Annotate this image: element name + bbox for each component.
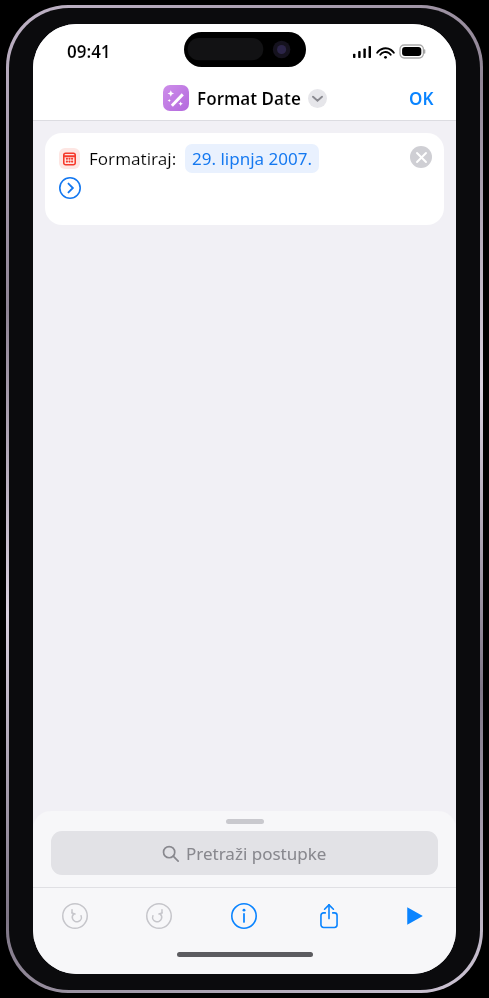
button[interactable]: Undo: [33, 895, 117, 937]
staticText: OK: [409, 87, 434, 110]
staticText: 09:41: [67, 40, 111, 63]
staticText: Formatiraj:: [89, 147, 177, 170]
button[interactable]: Pretraži postupke: [51, 831, 438, 875]
button[interactable]: Redo: [117, 895, 201, 937]
button[interactable]: Formatiraj:: [45, 133, 444, 225]
button[interactable]: OK: [387, 81, 456, 116]
staticText: Pretraži postupke: [186, 842, 327, 865]
staticText: 29. lipnja 2007.: [192, 147, 312, 170]
button[interactable]: 29. lipnja 2007.: [185, 144, 319, 173]
button[interactable]: Info: [201, 895, 286, 937]
button[interactable]: Format Date: [163, 85, 327, 111]
button[interactable]: Share: [286, 895, 371, 937]
staticText: Format Date: [197, 87, 301, 110]
button[interactable]: Expand details: [59, 177, 81, 199]
button[interactable]: Run: [371, 895, 456, 937]
button[interactable]: Clear: [410, 146, 432, 168]
other: Show more: [308, 89, 327, 108]
